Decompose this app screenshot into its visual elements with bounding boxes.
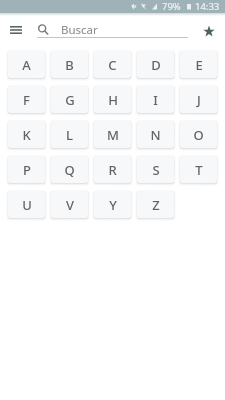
staticText: I (153, 91, 158, 109)
button[interactable]: Y (94, 191, 131, 218)
button[interactable]: S (137, 156, 174, 183)
staticText: F (23, 91, 30, 109)
button[interactable]: Z (137, 191, 174, 218)
button[interactable]: U (8, 191, 45, 218)
button[interactable]: Buscar (56, 21, 188, 39)
button[interactable]: H (94, 86, 131, 113)
button[interactable]: K (8, 121, 45, 148)
button[interactable]: P (8, 156, 45, 183)
staticText: 14:33 (195, 0, 220, 13)
staticText: E (195, 56, 203, 74)
button[interactable]: B (51, 51, 88, 78)
button[interactable]: Favorites (197, 19, 220, 42)
staticText: A (22, 56, 31, 74)
button[interactable]: C (94, 51, 131, 78)
staticText: C (108, 56, 117, 74)
staticText: Y (109, 196, 117, 214)
button[interactable]: J (180, 86, 217, 113)
staticText: J (197, 91, 201, 109)
button[interactable]: A (8, 51, 45, 78)
staticText: S (152, 161, 160, 179)
button[interactable]: V (51, 191, 88, 218)
staticText: Q (64, 161, 75, 179)
button[interactable]: R (94, 156, 131, 183)
staticText: K (22, 126, 31, 144)
staticText: P (23, 161, 31, 179)
staticText: Buscar (61, 22, 98, 38)
staticText: D (151, 56, 161, 74)
staticText: N (150, 126, 161, 144)
button[interactable]: Menu (4, 18, 27, 42)
button[interactable]: D (137, 51, 174, 78)
button[interactable]: Search (33, 19, 53, 39)
staticText: U (22, 196, 32, 214)
button[interactable]: O (180, 121, 217, 148)
staticText: T (195, 161, 203, 179)
staticText: Z (152, 196, 160, 214)
staticText: H (108, 91, 118, 109)
button[interactable]: N (137, 121, 174, 148)
button[interactable]: G (51, 86, 88, 113)
button[interactable]: E (180, 51, 217, 78)
staticText: 79% (162, 0, 181, 13)
button[interactable]: Q (51, 156, 88, 183)
button[interactable]: M (94, 121, 131, 148)
button[interactable]: L (51, 121, 88, 148)
staticText: V (66, 196, 74, 214)
staticText: R (108, 161, 117, 179)
button[interactable]: T (180, 156, 217, 183)
staticText: O (193, 126, 204, 144)
button[interactable]: I (137, 86, 174, 113)
staticText: G (65, 91, 75, 109)
button[interactable]: F (8, 86, 45, 113)
staticText: L (66, 126, 73, 144)
staticText: B (65, 56, 74, 74)
staticText: M (107, 126, 119, 144)
